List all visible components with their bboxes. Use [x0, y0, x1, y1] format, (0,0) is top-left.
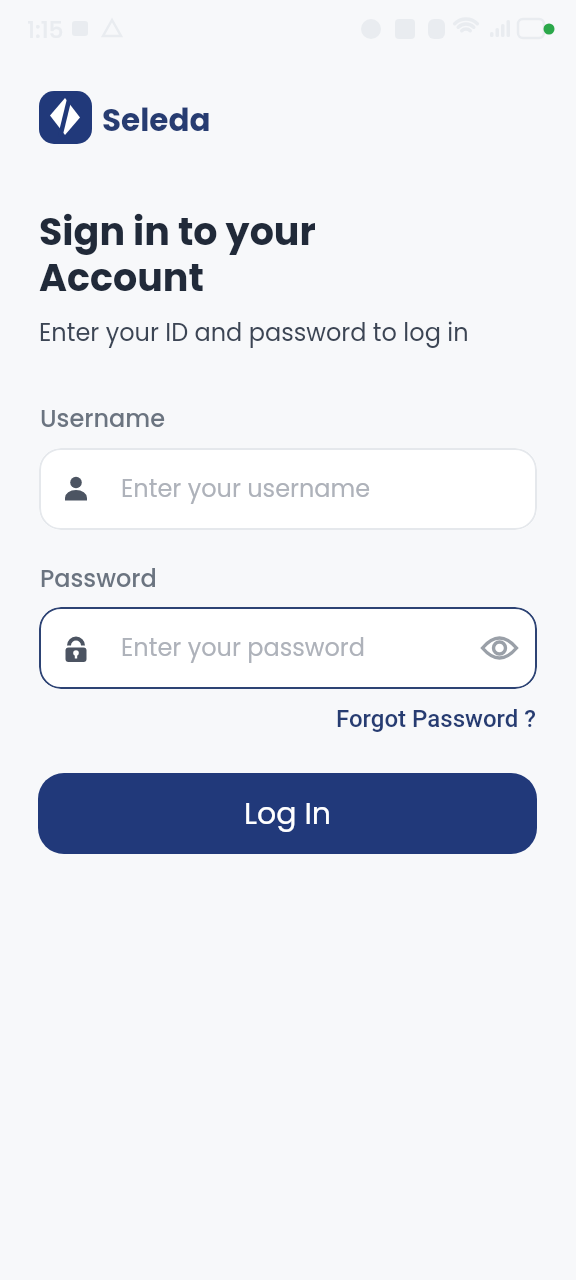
staticText: 1:15: [27, 14, 64, 46]
staticText: Username: [40, 402, 165, 436]
button[interactable]: Enter your username: [39, 448, 537, 530]
staticText: Enter your password: [121, 631, 481, 665]
staticText: Password: [40, 562, 157, 596]
staticText: Enter your username: [121, 472, 371, 506]
staticText: Enter your ID and password to log in: [39, 316, 469, 350]
button[interactable]: Log In: [38, 773, 537, 854]
staticText: Sign in to your Account: [39, 205, 316, 305]
button[interactable]: Forgot Password ?: [336, 705, 537, 733]
staticText: Seleda: [102, 98, 211, 141]
button[interactable]: Enter your password: [39, 607, 537, 689]
staticText: Log In: [244, 793, 332, 835]
